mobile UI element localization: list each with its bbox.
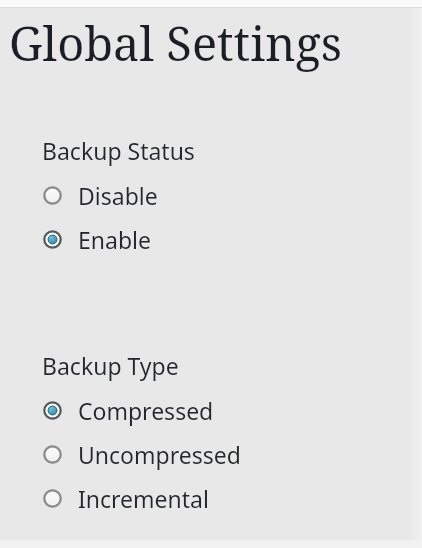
staticText: Enable — [78, 224, 151, 255]
button[interactable]: Enable — [0, 221, 422, 258]
staticText: Incremental — [78, 483, 209, 514]
button[interactable]: Compressed — [0, 392, 422, 429]
staticText: Backup Type — [42, 350, 179, 381]
staticText: Uncompressed — [78, 439, 241, 470]
staticText: Disable — [78, 180, 158, 211]
staticText: Compressed — [78, 395, 214, 426]
button[interactable]: Disable — [0, 177, 422, 214]
button[interactable]: Incremental — [0, 480, 422, 517]
staticText: Global Settings — [9, 11, 342, 75]
staticText: Backup Status — [42, 135, 195, 166]
button[interactable]: Uncompressed — [0, 436, 422, 473]
